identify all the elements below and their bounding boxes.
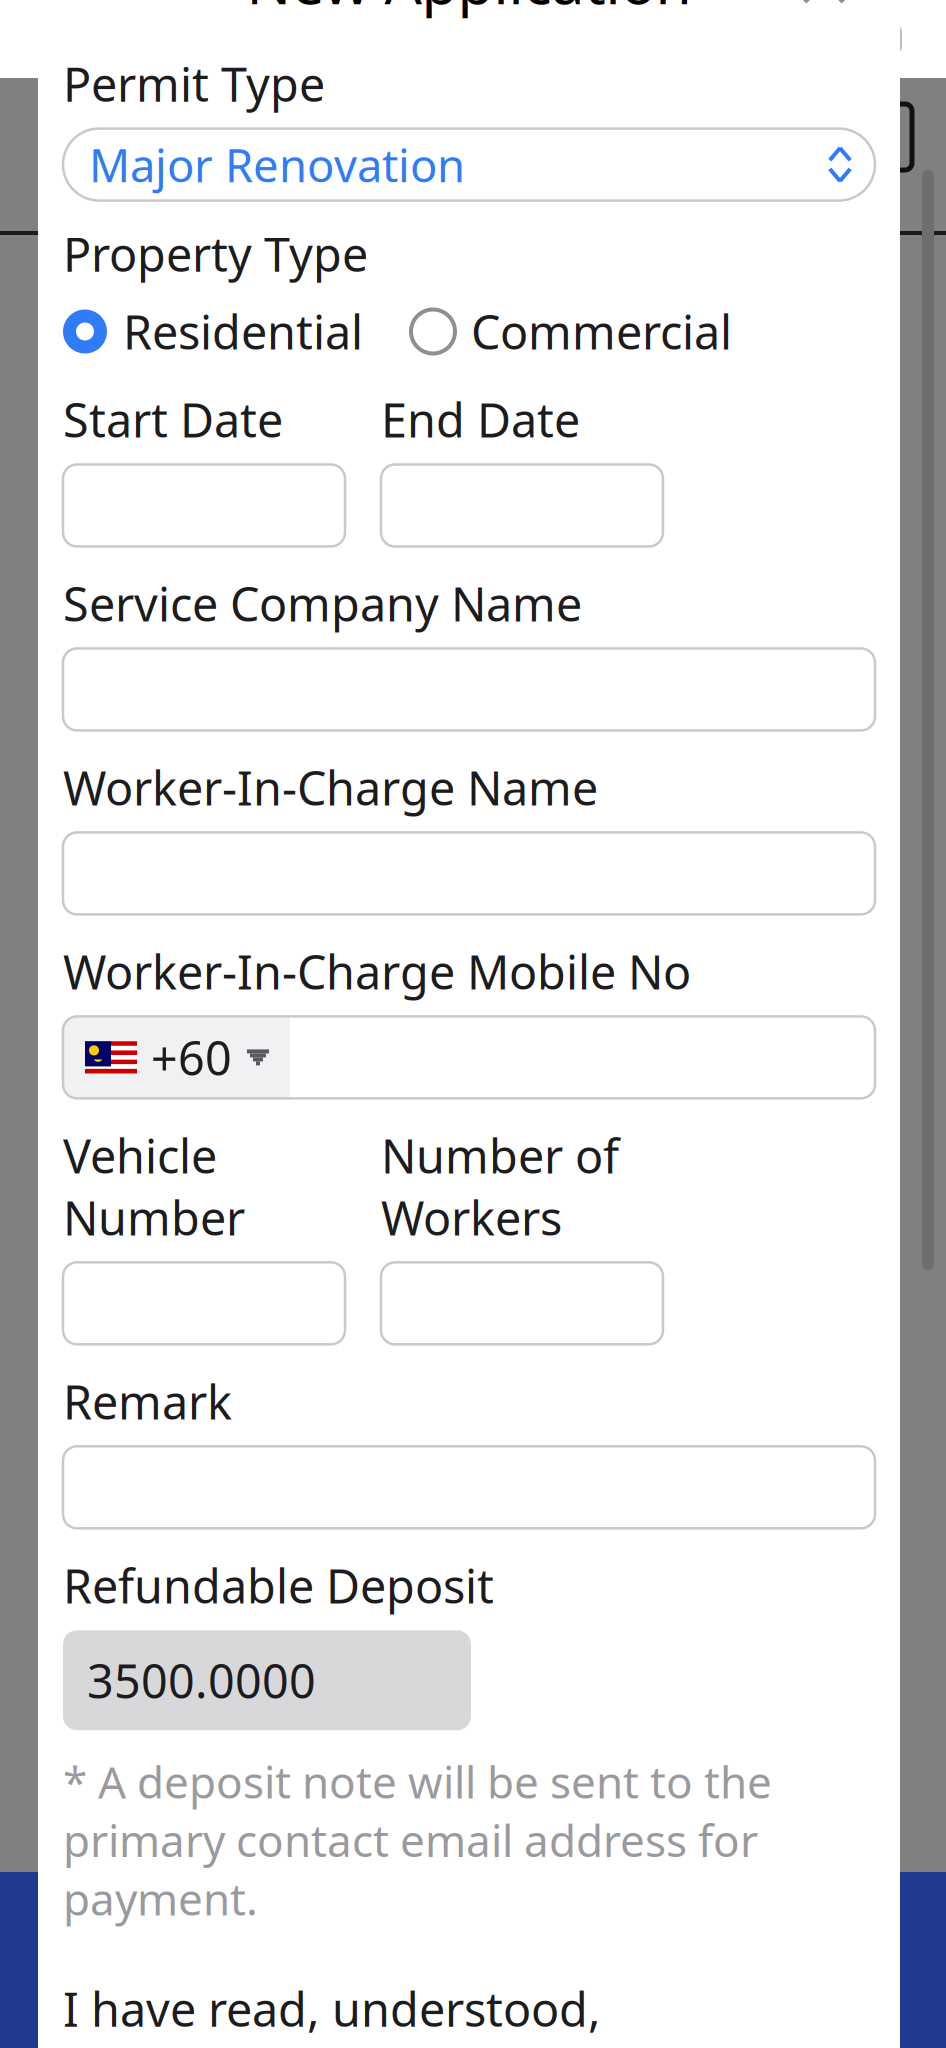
staticText: Refundable Deposit: [63, 1554, 494, 1616]
staticText: Commercial: [471, 300, 732, 362]
staticText: Contractor Service Permits: [108, 101, 837, 173]
staticText: Residential: [123, 300, 363, 362]
staticText: Property Type: [63, 223, 368, 285]
staticText: New Application: [246, 0, 691, 21]
staticText: 3500.0000: [87, 1649, 316, 1711]
staticText: +60: [151, 1026, 232, 1088]
staticText: Number of Workers: [381, 1124, 619, 1248]
button[interactable]: Residential: [63, 300, 363, 362]
staticText: Worker-In-Charge Name: [63, 756, 598, 818]
staticText: Remark: [63, 1370, 232, 1432]
staticText: Vehicle Number: [63, 1124, 245, 1248]
staticText: Worker-In-Charge Mobile No: [63, 940, 691, 1002]
staticText: I have read, understood, acknowledge, an…: [63, 1978, 829, 2048]
button[interactable]: Close: [791, 0, 857, 15]
staticText: 9:48: [54, 4, 162, 74]
staticText: Start Date: [63, 388, 283, 450]
button[interactable]: Major Renovation: [63, 129, 875, 201]
staticText: Permit Type: [63, 53, 325, 115]
staticText: * A deposit note will be sent to the pri…: [63, 1752, 772, 1928]
button[interactable]: Download: [854, 105, 918, 169]
staticText: Major Renovation: [89, 134, 465, 195]
staticText: Service Company Name: [63, 572, 582, 634]
button[interactable]: Back: [28, 105, 92, 169]
staticText: End Date: [381, 388, 580, 450]
button[interactable]: Commercial: [411, 300, 732, 362]
